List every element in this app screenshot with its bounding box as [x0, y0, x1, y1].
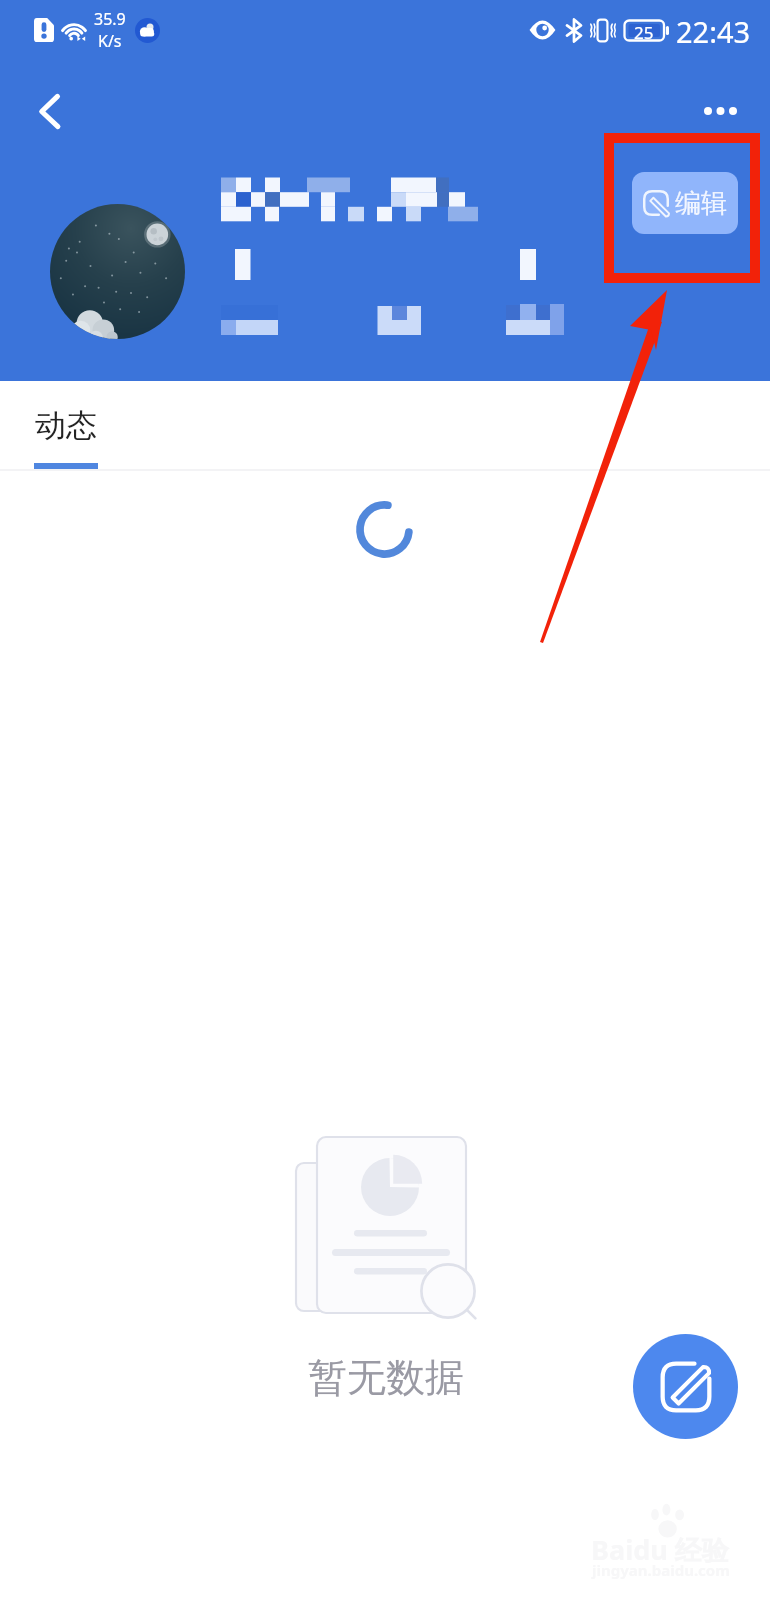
- button[interactable]: 编辑: [632, 172, 738, 234]
- staticText: 25: [634, 21, 654, 44]
- staticText: K/s: [98, 30, 122, 52]
- staticText: 暂无数据: [308, 1353, 464, 1402]
- button[interactable]: New post: [633, 1334, 738, 1439]
- staticText: jingyan.baidu.com: [592, 1560, 730, 1580]
- button[interactable]: More options: [688, 79, 752, 143]
- button[interactable]: Profile photo: [50, 204, 185, 339]
- staticText: Baidu 经验: [591, 1531, 729, 1568]
- staticText: 22:43: [676, 12, 751, 51]
- staticText: 35.9: [94, 8, 126, 30]
- staticText: 动态: [35, 406, 97, 445]
- staticText: 编辑: [675, 187, 727, 220]
- button[interactable]: Back: [17, 79, 81, 143]
- button[interactable]: 动态: [34, 381, 98, 471]
